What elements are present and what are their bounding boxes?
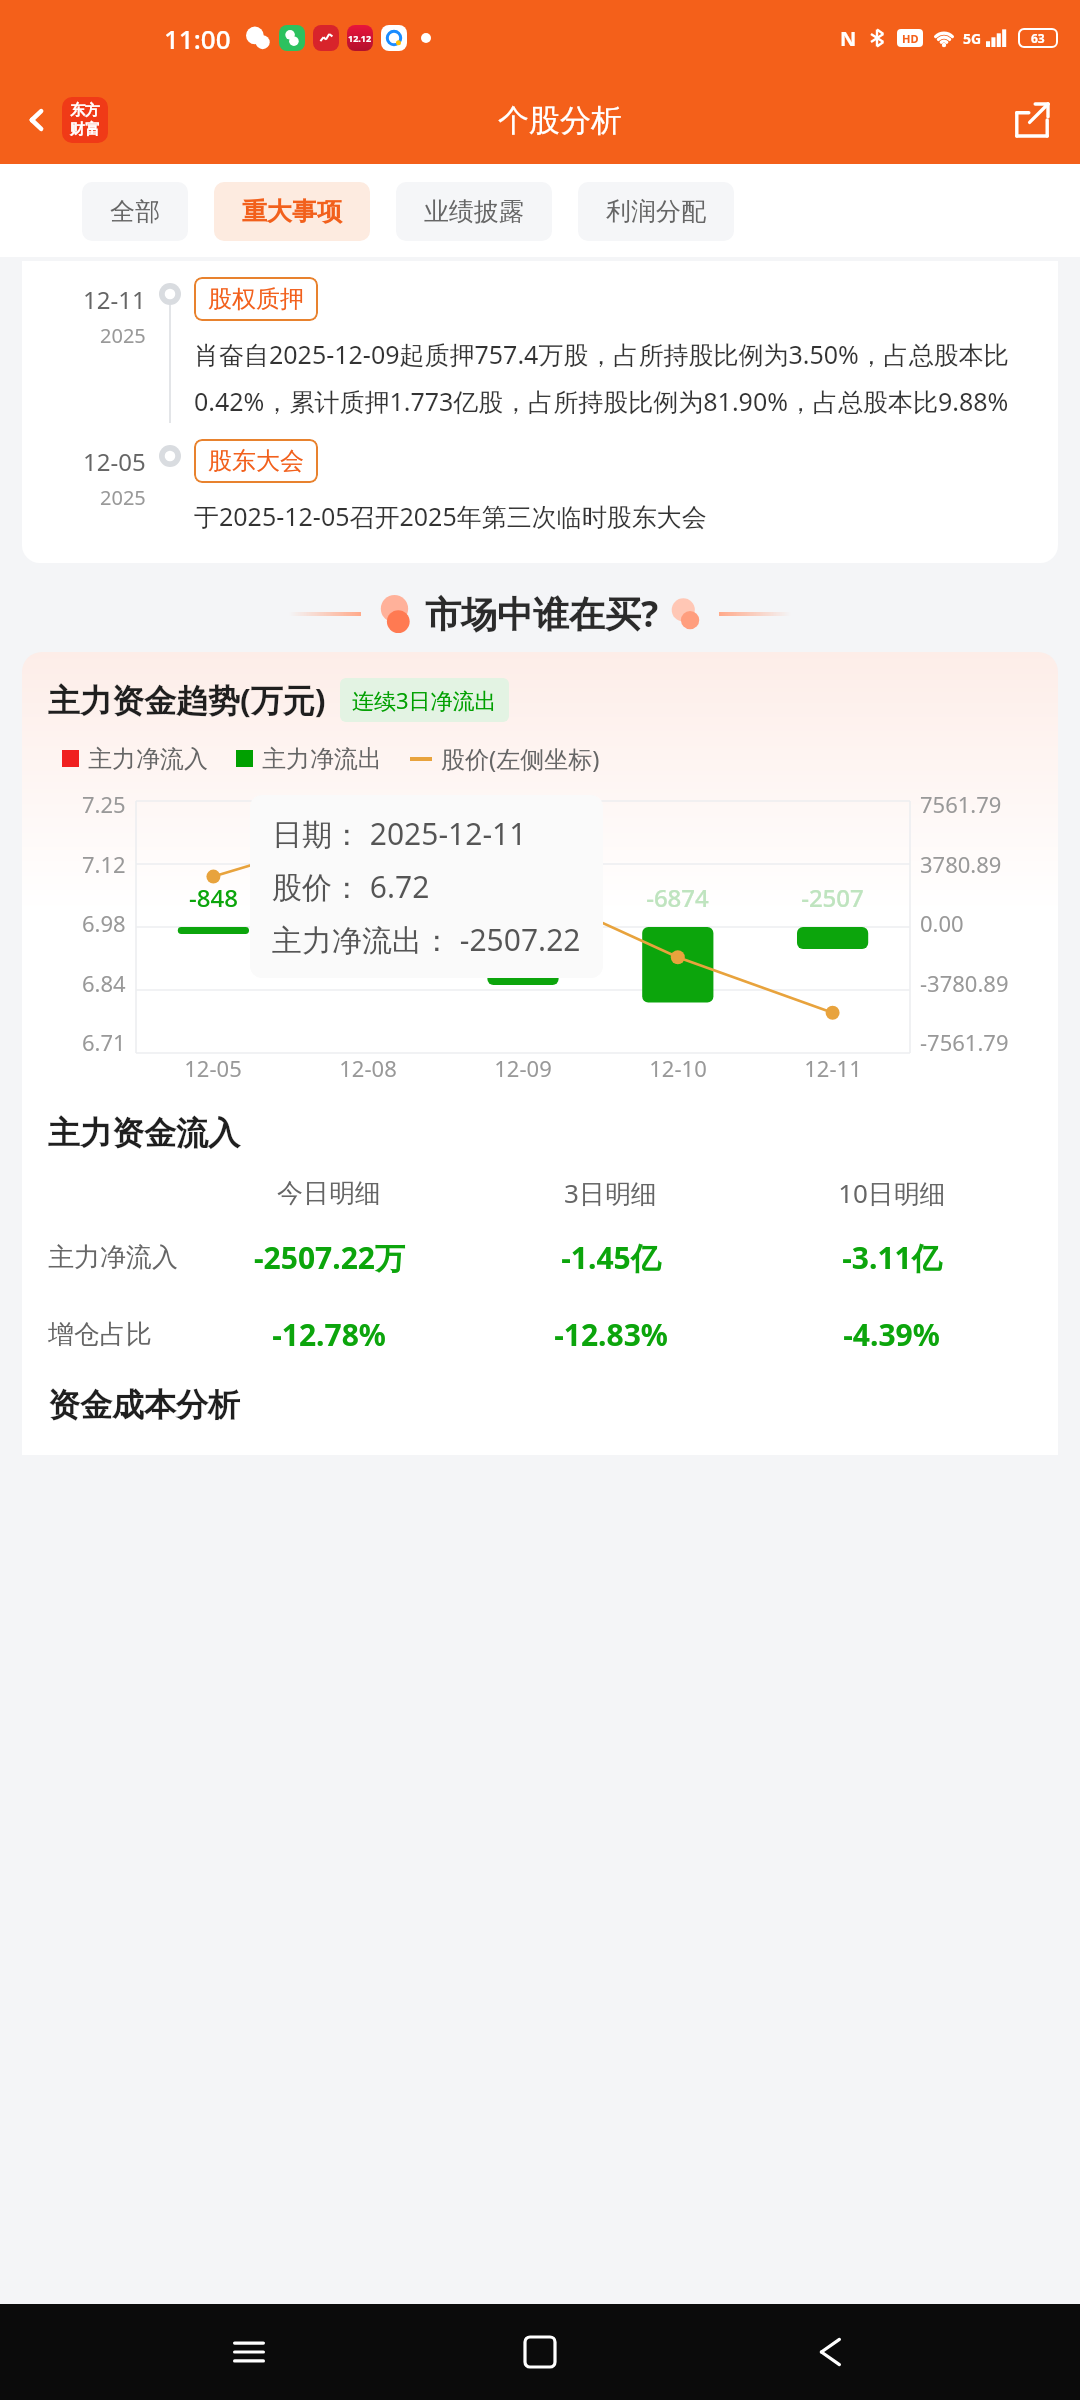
staticText: 11:00 (164, 21, 231, 56)
staticText: 6.84 (82, 968, 126, 998)
staticText: 3日明细 (564, 1175, 657, 1211)
staticText: 7561.79 (920, 789, 1002, 819)
staticText: -2507.22万 (254, 1237, 405, 1278)
button[interactable]: 利润分配 (578, 182, 734, 241)
button[interactable]: Back (0, 89, 116, 151)
staticText: 主力净流出： -2507.22 (272, 919, 581, 960)
staticText: 资金成本分析 (48, 1385, 240, 1425)
staticText: 12-05 (184, 1053, 242, 1083)
staticText: 今日明细 (277, 1177, 381, 1210)
staticText: 股价(左侧坐标) (441, 742, 600, 775)
staticText: -3.11亿 (842, 1237, 942, 1278)
staticText: 主力净流入 (88, 744, 208, 774)
button[interactable]: Home (498, 2310, 582, 2394)
staticText: 东方 (70, 101, 100, 120)
staticText: HD (902, 31, 919, 46)
staticText: -2507 (801, 881, 864, 914)
button[interactable]: Back (789, 2310, 873, 2394)
staticText: 12-08 (339, 1053, 397, 1083)
button[interactable]: 股权质押 (194, 277, 318, 321)
staticText: 日期： 2025-12-11 (272, 813, 527, 854)
staticText: 5G (963, 29, 982, 48)
staticText: 2025 (100, 322, 146, 349)
staticText: 12.12 (348, 32, 372, 44)
button[interactable]: 股东大会 (194, 439, 318, 483)
staticText: 财富 (70, 120, 100, 139)
staticText: 12-05 (83, 445, 146, 478)
button[interactable]: Share (1004, 92, 1080, 148)
button[interactable]: 业绩披露 (396, 182, 552, 241)
staticText: 业绩披露 (424, 196, 524, 227)
staticText: 7.25 (82, 789, 126, 819)
staticText: 10日明细 (838, 1175, 946, 1211)
staticText: 股价： 6.72 (272, 866, 430, 907)
staticText: N (840, 25, 857, 52)
staticText: 股东大会 (208, 446, 304, 476)
staticText: 于2025-12-05召开2025年第三次临时股东大会 (194, 499, 707, 533)
staticText: -6874 (646, 881, 709, 914)
staticText: 主力净流出 (262, 744, 382, 774)
staticText: -3780.89 (920, 968, 1009, 998)
button[interactable]: Recents (207, 2310, 291, 2394)
staticText: -12.83% (554, 1314, 668, 1355)
staticText: 7.12 (82, 849, 126, 879)
staticText: -4.39% (843, 1314, 940, 1355)
staticText: 63 (1031, 30, 1045, 46)
staticText: -7561.79 (920, 1027, 1009, 1057)
staticText: 利润分配 (606, 196, 706, 227)
staticText: 肖奋自2025-12-09起质押757.4万股，占所持股比例为3.50%，占总股… (194, 337, 1032, 419)
staticText: 3780.89 (920, 849, 1002, 879)
staticText: 0.00 (920, 908, 964, 938)
staticText: 主力资金趋势(万元) (48, 678, 326, 722)
staticText: 12-10 (649, 1053, 707, 1083)
staticText: 主力净流入 (48, 1241, 178, 1274)
staticText: 12-09 (494, 1053, 552, 1083)
staticText: 6.71 (82, 1027, 126, 1057)
staticText: 连续3日净流出 (352, 685, 497, 715)
button[interactable]: 重大事项 (214, 182, 370, 241)
staticText: -1.45亿 (561, 1237, 661, 1278)
staticText: 股权质押 (208, 284, 304, 314)
staticText: 市场中谁在买? (425, 589, 659, 638)
staticText: 6.98 (82, 908, 126, 938)
staticText: -848 (189, 881, 238, 914)
staticText: 主力资金流入 (48, 1113, 240, 1153)
staticText: 全部 (110, 196, 160, 227)
staticText: 重大事项 (242, 196, 342, 227)
button[interactable]: 全部 (82, 182, 188, 241)
staticText: 12-11 (804, 1053, 862, 1083)
staticText: -4004 (336, 881, 399, 914)
staticText: 2025 (100, 484, 146, 511)
staticText: 个股分析 (498, 101, 622, 140)
staticText: -12.78% (272, 1314, 386, 1355)
staticText: 12-11 (83, 283, 146, 316)
staticText: 增仓占比 (48, 1318, 152, 1351)
